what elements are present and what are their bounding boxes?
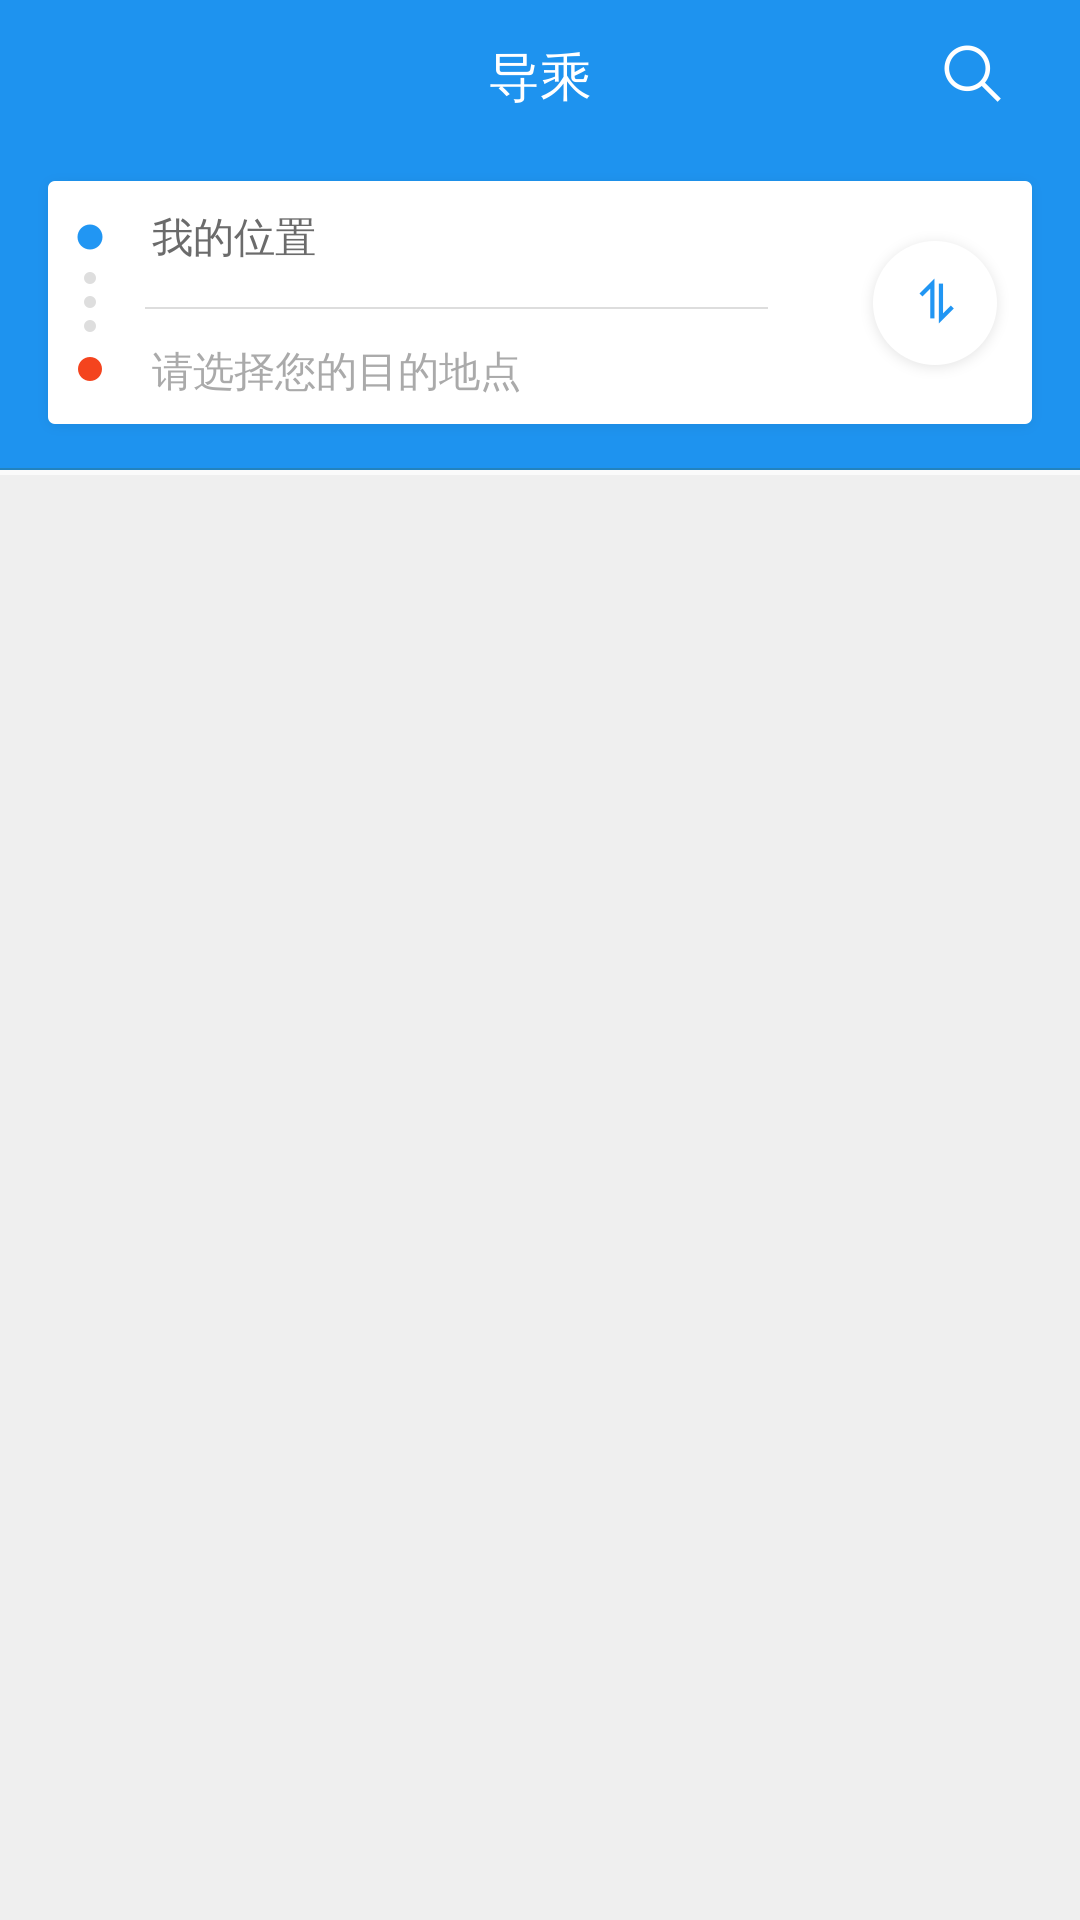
button[interactable]: Swap origin and destination	[855, 223, 1015, 383]
button[interactable]: 请选择您的目的地点	[48, 314, 772, 430]
staticText: 请选择您的目的地点	[152, 347, 521, 397]
button[interactable]: Search	[898, 0, 1048, 149]
staticText: 我的位置	[152, 213, 316, 263]
staticText: 导乘	[488, 46, 592, 110]
button[interactable]: 我的位置	[48, 175, 772, 301]
